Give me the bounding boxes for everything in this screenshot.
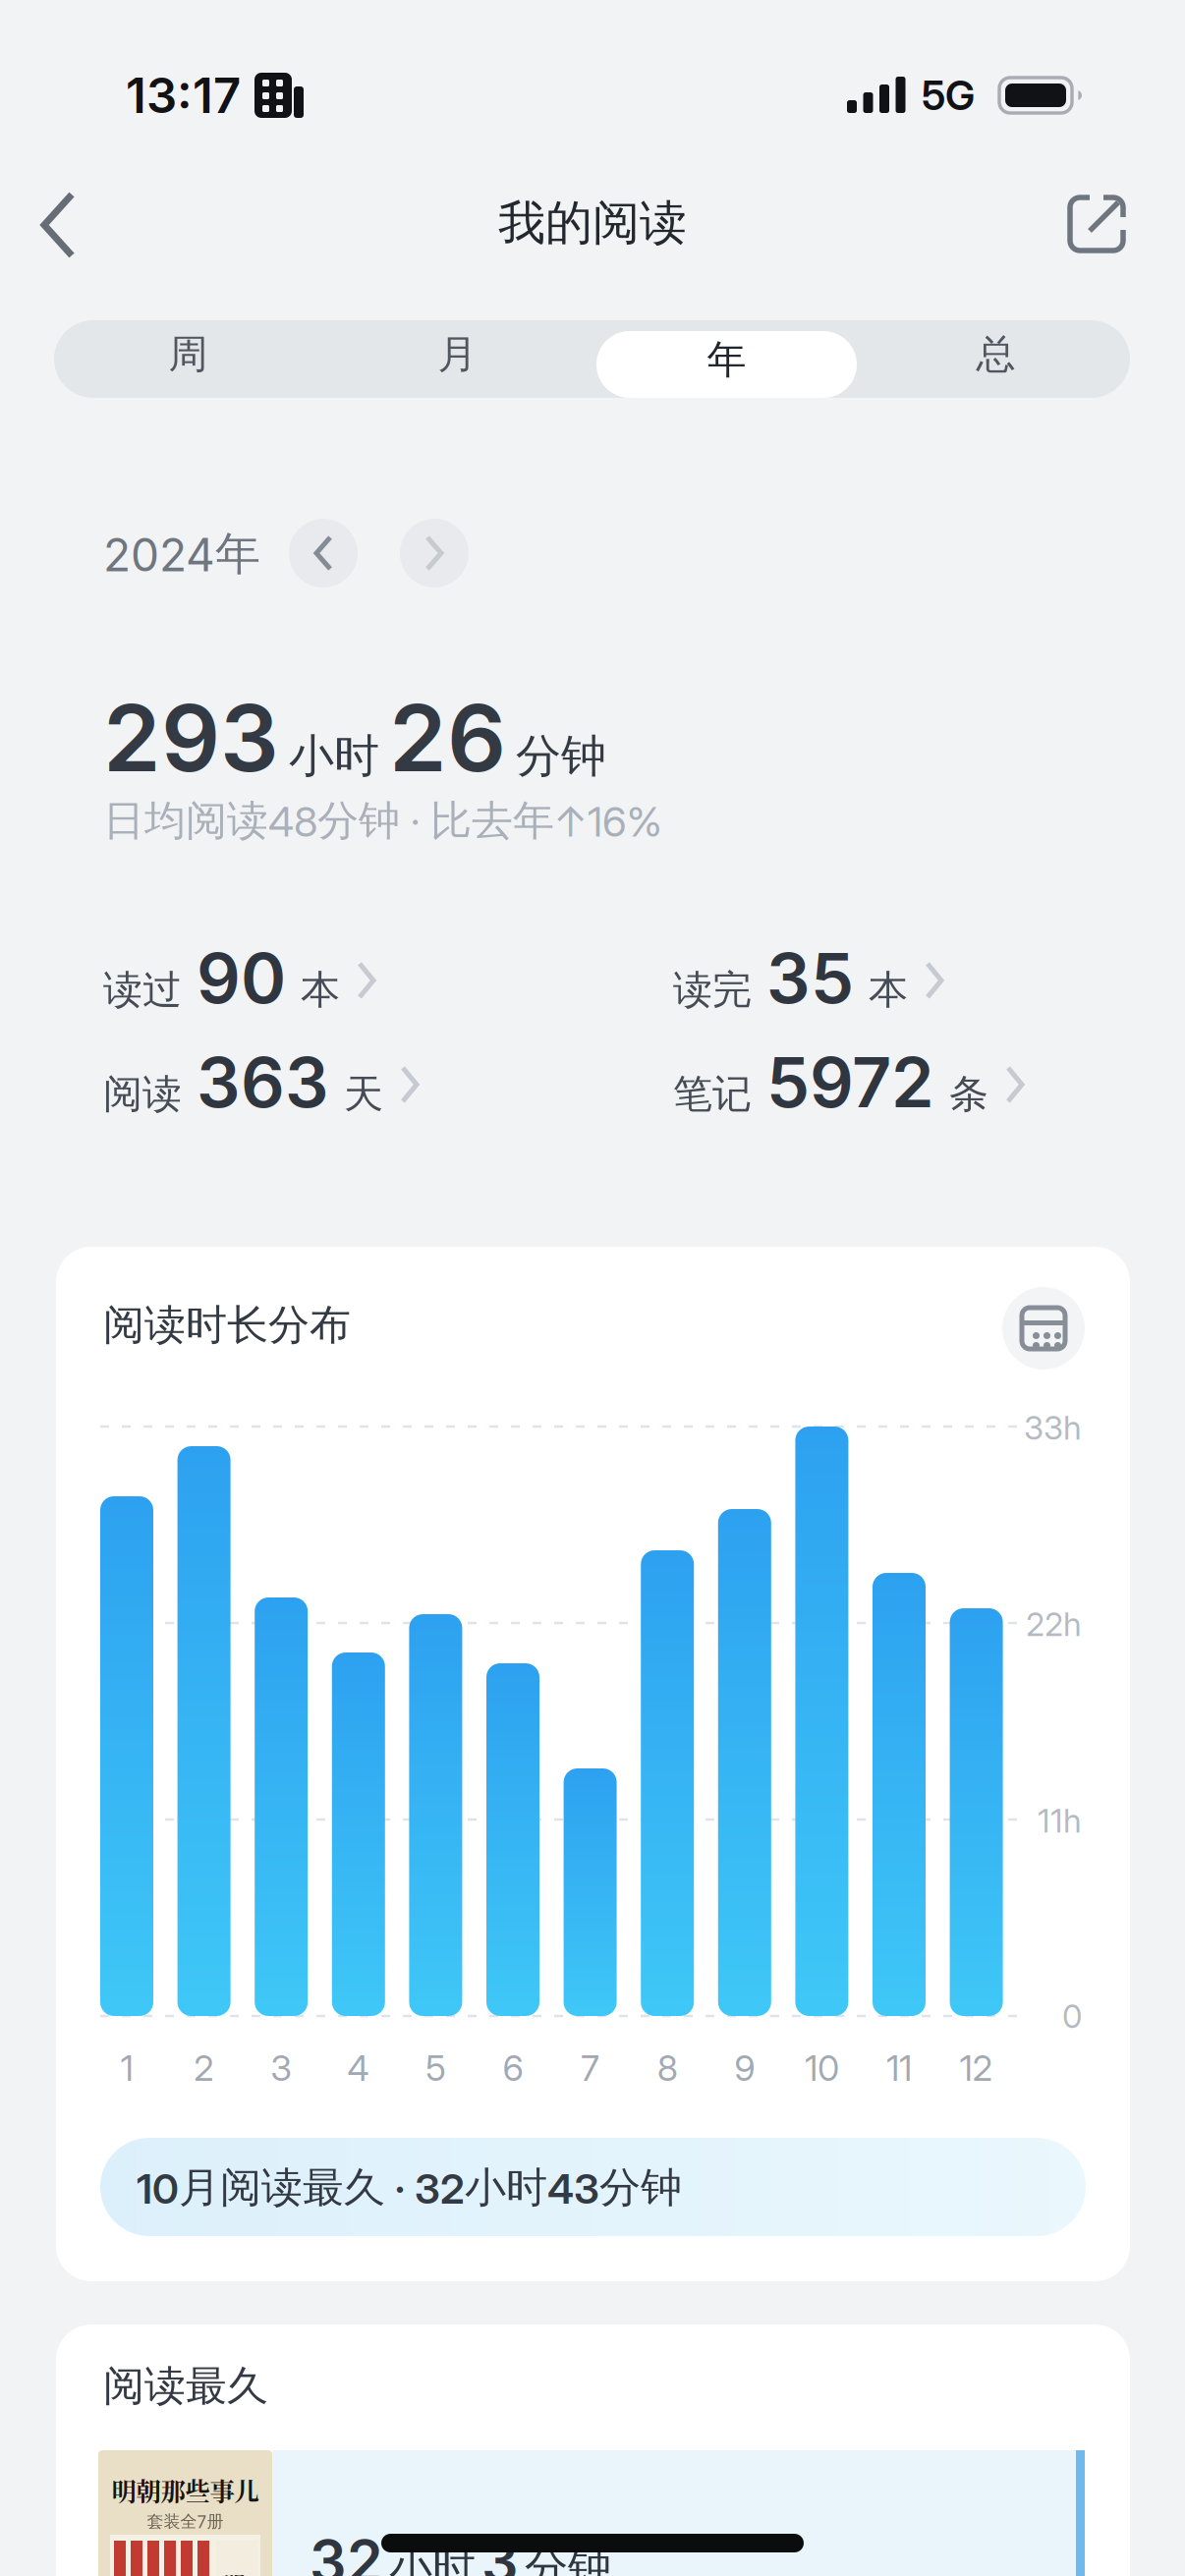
staticText: 5G <box>922 71 975 120</box>
staticText: 月 <box>438 330 477 379</box>
staticText: 5972 <box>766 1041 934 1124</box>
staticText: 小时 <box>389 2540 476 2576</box>
button[interactable] <box>1070 197 1123 251</box>
staticText: 11 <box>886 2047 912 2089</box>
staticText: 2024年 <box>103 526 260 582</box>
staticText: 13:17 <box>126 66 241 125</box>
button[interactable]: 10月阅读最久 · 32小时43分钟 <box>100 2138 1086 2236</box>
button[interactable]: 年 <box>592 320 861 398</box>
staticText: 8 <box>657 2047 678 2089</box>
staticText: 9 <box>734 2047 755 2089</box>
button[interactable]: 读完 <box>673 936 946 1020</box>
button[interactable]: 笔记 <box>673 1041 1027 1124</box>
staticText: 小时 <box>289 728 379 784</box>
button[interactable] <box>1002 1287 1085 1370</box>
staticText: 分钟 <box>516 728 606 784</box>
staticText: 条 <box>949 1069 988 1119</box>
staticText: 年 <box>707 335 746 385</box>
staticText: 33h <box>1024 1408 1082 1447</box>
staticText: 1 <box>120 2047 133 2089</box>
staticText: 日均阅读48分钟 · 比去年↑16% <box>103 795 662 847</box>
staticText: 3 <box>270 2047 292 2089</box>
staticText: 0 <box>1062 1997 1082 2036</box>
staticText: 10 <box>805 2047 839 2089</box>
staticText: 明 <box>224 2568 245 2576</box>
staticText: 3 <box>481 2526 519 2576</box>
staticText: 11h <box>1038 1801 1082 1840</box>
staticText: 2 <box>194 2047 214 2089</box>
staticText: 阅读最久 <box>103 2360 268 2412</box>
button[interactable]: 明朝那些事儿 <box>98 2450 1085 2576</box>
staticText: 6 <box>503 2047 523 2089</box>
staticText: 读过 <box>103 965 182 1015</box>
staticText: 7 <box>581 2047 599 2089</box>
button[interactable]: 读过 <box>103 936 378 1020</box>
staticText: 363 <box>197 1041 329 1124</box>
button[interactable]: 阅读 <box>103 1041 422 1124</box>
staticText: 本 <box>869 965 908 1015</box>
staticText: 4 <box>347 2047 370 2089</box>
staticText: 周 <box>169 330 208 379</box>
staticText: 分钟 <box>525 2540 611 2576</box>
button[interactable] <box>11 181 109 269</box>
staticText: 读完 <box>673 965 752 1015</box>
staticText: 12 <box>960 2047 993 2089</box>
staticText: 阅读时长分布 <box>103 1299 351 1351</box>
staticText: 32 <box>310 2526 383 2576</box>
staticText: 本 <box>301 965 340 1015</box>
staticText: 293 <box>103 682 279 793</box>
staticText: 26 <box>389 682 506 793</box>
staticText: 阅读 <box>103 1069 182 1119</box>
staticText: 总 <box>976 330 1016 379</box>
staticText: 22h <box>1026 1605 1082 1644</box>
staticText: 天 <box>344 1069 383 1119</box>
staticText: 5 <box>425 2047 446 2089</box>
staticText: 笔记 <box>673 1069 752 1119</box>
button[interactable]: 月 <box>323 320 592 398</box>
staticText: 90 <box>197 936 286 1020</box>
staticText: 套装全7册 <box>147 2511 224 2532</box>
button[interactable]: 总 <box>861 320 1130 398</box>
staticText: 35 <box>766 936 854 1020</box>
staticText: 10月阅读最久 · 32小时43分钟 <box>137 2162 682 2214</box>
staticText: 明朝那些事儿 <box>112 2472 259 2508</box>
button[interactable] <box>400 519 469 588</box>
button[interactable]: 周 <box>54 320 323 398</box>
staticText: 我的阅读 <box>498 193 687 253</box>
button[interactable] <box>289 519 358 588</box>
